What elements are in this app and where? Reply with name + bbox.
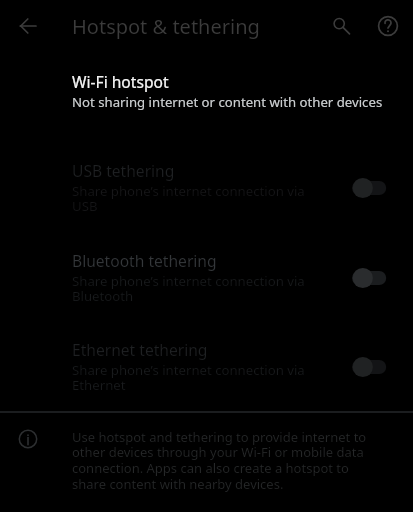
button[interactable]: Bluetooth tethering switch — [344, 259, 394, 297]
button[interactable]: Search — [317, 2, 365, 50]
staticText: Not sharing internet or content with oth… — [72, 93, 402, 111]
staticText: Share phone’s internet connection via Bl… — [72, 272, 317, 305]
button[interactable]: USB tethering switch — [344, 169, 394, 207]
staticText: Wi-Fi hotspot — [72, 71, 169, 92]
button[interactable]: Wi-Fi hotspot — [0, 47, 413, 137]
button[interactable]: Navigate up — [4, 2, 52, 50]
staticText: Ethernet tethering — [72, 339, 208, 360]
staticText: Share phone’s internet connection via Et… — [72, 361, 317, 394]
staticText: Use hotspot and tethering to provide int… — [72, 428, 372, 493]
button[interactable]: Ethernet tethering — [0, 315, 413, 405]
button[interactable]: Ethernet tethering switch — [344, 348, 394, 386]
staticText: Hotspot & tethering — [72, 13, 260, 40]
staticText: USB tethering — [72, 160, 175, 181]
staticText: Bluetooth tethering — [72, 250, 217, 271]
button[interactable]: USB tethering — [0, 136, 413, 226]
button[interactable]: Help — [364, 2, 412, 50]
staticText: Share phone’s internet connection via US… — [72, 182, 317, 215]
button[interactable]: Bluetooth tethering — [0, 226, 413, 316]
